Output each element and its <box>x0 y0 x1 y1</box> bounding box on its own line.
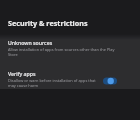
staticText: Security & restrictions <box>8 18 88 28</box>
button[interactable]: Verify apps <box>8 70 100 88</box>
button[interactable]: Verify apps toggle, on <box>101 74 119 88</box>
staticText: Disallow or warn before installation of … <box>8 78 100 88</box>
staticText: Allow installation of apps from sources … <box>8 47 118 57</box>
staticText: Verify apps <box>8 70 36 77</box>
staticText: Unknown sources <box>8 39 53 46</box>
button[interactable]: Unknown sources <box>8 39 118 57</box>
button[interactable]: Security & restrictions <box>0 0 140 34</box>
